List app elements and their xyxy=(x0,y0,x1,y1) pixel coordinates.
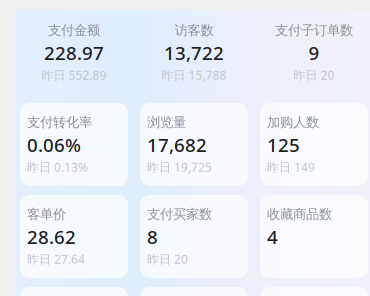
staticText: 昨日 552.89 xyxy=(41,67,106,83)
staticText: 支付子订单数 xyxy=(275,22,353,38)
staticText: 4 xyxy=(267,224,278,249)
staticText: 9 xyxy=(308,40,319,65)
staticText: 访客数 xyxy=(174,22,213,38)
button[interactable]: 客单价 xyxy=(20,195,128,278)
staticText: 昨日 20 xyxy=(293,67,334,83)
staticText: 支付转化率 xyxy=(27,114,92,130)
button[interactable]: 访客数 xyxy=(140,11,248,94)
staticText: 228.97 xyxy=(44,40,104,65)
staticText: 0.06% xyxy=(27,132,81,157)
staticText: 昨日 27.64 xyxy=(27,251,85,267)
staticText: 支付买家数 xyxy=(147,206,212,222)
staticText: 浏览量 xyxy=(147,114,186,130)
staticText: 17,682 xyxy=(147,132,207,157)
button[interactable]: 浏览量 xyxy=(140,103,248,186)
staticText: 13,722 xyxy=(164,40,224,65)
staticText: 客单价 xyxy=(27,206,66,222)
button[interactable]: 收藏商品数 xyxy=(260,195,368,278)
staticText: 28.62 xyxy=(27,224,76,249)
staticText: 加购人数 xyxy=(267,114,319,130)
staticText: 昨日 19,725 xyxy=(147,159,212,175)
button[interactable]: 支付买家数 xyxy=(140,195,248,278)
staticText: 昨日 0.13% xyxy=(27,159,88,175)
button[interactable]: 支付子订单数 xyxy=(260,11,368,94)
staticText: 支付金额 xyxy=(48,22,100,38)
button[interactable]: 支付金额 xyxy=(20,11,128,94)
staticText: 8 xyxy=(147,224,158,249)
staticText: 昨日 15,788 xyxy=(161,67,226,83)
staticText: 昨日 149 xyxy=(267,159,315,175)
staticText: 收藏商品数 xyxy=(267,206,332,222)
button[interactable]: 支付转化率 xyxy=(20,103,128,186)
staticText: 昨日 20 xyxy=(147,251,188,267)
staticText: 125 xyxy=(267,132,300,157)
button[interactable]: 加购人数 xyxy=(260,103,368,186)
